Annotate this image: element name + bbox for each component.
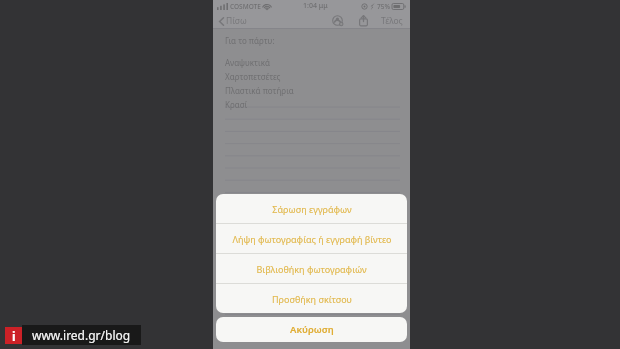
staticText: 1:04 μμ — [303, 1, 328, 11]
button[interactable]: Προσθήκη σκίτσου — [216, 284, 407, 313]
staticText: Χαρτοπετσέτες — [225, 71, 281, 82]
button[interactable]: i — [5, 325, 141, 345]
staticText: Ακύρωση — [290, 323, 334, 336]
staticText: 75% — [377, 2, 390, 11]
button[interactable]: Βιβλιοθήκη φωτογραφιών — [216, 254, 407, 283]
staticText: Βιβλιοθήκη φωτογραφιών — [256, 263, 367, 275]
staticText: www.ired.gr/blog — [32, 327, 131, 343]
staticText: Πλαστικά ποτήρια — [225, 85, 294, 96]
staticText: Λήψη φωτογραφίας ή εγγραφή βίντεο — [232, 233, 392, 245]
staticText: Προσθήκη σκίτσου — [272, 293, 352, 305]
button[interactable]: Κοινή χρήση — [355, 13, 371, 28]
button[interactable]: Σάρωση εγγράφων — [216, 194, 407, 223]
button[interactable]: Πρόσθεση ατόμων — [328, 13, 346, 28]
staticText: Για το πάρτυ: — [225, 35, 275, 46]
staticText: Αναψυκτικά — [225, 57, 270, 68]
staticText: Τέλος — [381, 15, 403, 27]
button[interactable]: Τέλος — [379, 13, 405, 29]
staticText: COSMOTE — [230, 2, 261, 11]
button[interactable]: Λήψη φωτογραφίας ή εγγραφή βίντεο — [216, 224, 407, 253]
staticText: Κρασί — [225, 99, 248, 110]
staticText: Σάρωση εγγράφων — [272, 203, 352, 215]
staticText: i — [12, 328, 16, 344]
staticText: Πίσω — [226, 15, 247, 27]
button[interactable]: Πίσω — [218, 13, 248, 29]
button[interactable]: Ακύρωση — [216, 317, 407, 342]
